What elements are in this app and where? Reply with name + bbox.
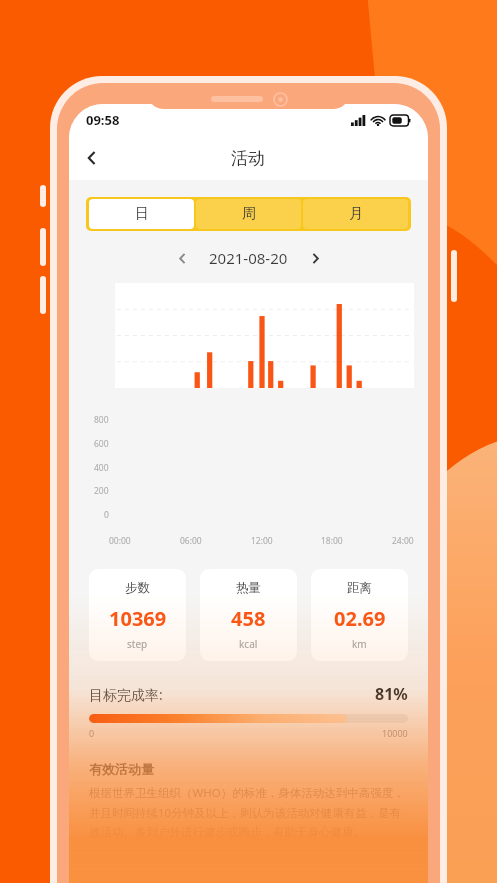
staticText: 10369 <box>109 605 167 632</box>
staticText: 日 <box>135 205 149 223</box>
staticText: km <box>352 637 367 651</box>
staticText: 18:00 <box>321 535 343 547</box>
staticText: 目标完成率: <box>89 685 163 704</box>
staticText: 400 <box>94 462 109 474</box>
staticText: 458 <box>231 605 266 632</box>
staticText: 0 <box>89 727 95 739</box>
staticText: 600 <box>94 438 109 450</box>
button[interactable]: Back <box>69 136 115 180</box>
button[interactable]: Previous day <box>169 245 195 271</box>
button[interactable]: 距离 <box>311 569 408 661</box>
staticText: 200 <box>94 485 109 497</box>
staticText: 10000 <box>382 727 408 739</box>
staticText: 0 <box>104 509 109 521</box>
staticText: 月 <box>349 205 363 223</box>
staticText: 24:00 <box>392 535 414 547</box>
staticText: 800 <box>94 414 109 426</box>
staticText: 02.69 <box>334 605 386 632</box>
staticText: 热量 <box>236 580 261 596</box>
staticText: 06:00 <box>180 535 202 547</box>
button[interactable]: 月 <box>303 199 408 229</box>
staticText: 09:58 <box>86 111 120 129</box>
staticText: 00:00 <box>109 535 131 547</box>
staticText: 周 <box>242 205 256 223</box>
button[interactable]: 步数 <box>89 569 186 661</box>
staticText: step <box>127 637 148 651</box>
button[interactable]: 热量 <box>200 569 297 661</box>
button[interactable]: Next day <box>302 245 328 271</box>
staticText: 活动 <box>231 148 265 169</box>
button[interactable]: 日 <box>89 199 194 229</box>
button[interactable]: 周 <box>196 199 301 229</box>
staticText: kcal <box>239 637 258 651</box>
staticText: 距离 <box>347 580 372 596</box>
staticText: 步数 <box>125 580 150 596</box>
staticText: 2021-08-20 <box>209 248 288 268</box>
staticText: 12:00 <box>251 535 273 547</box>
staticText: 有效活动量 <box>89 761 154 777</box>
staticText: 81% <box>375 683 408 705</box>
staticText: 根据世界卫生组织（WHO）的标准，身体活动达到中高强度，并且时间持续10分钟及以… <box>89 785 408 840</box>
